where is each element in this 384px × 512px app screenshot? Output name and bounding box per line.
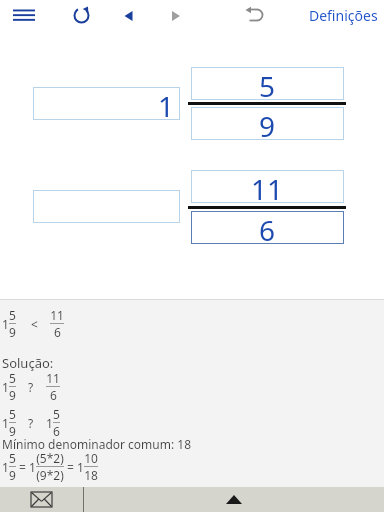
staticText: 5: [259, 67, 276, 100]
staticText: 1: [77, 459, 84, 475]
button[interactable]: [116, 2, 142, 30]
staticText: 10: [84, 450, 98, 466]
staticText: <: [31, 316, 38, 332]
button[interactable]: 9: [191, 107, 344, 140]
button[interactable]: [6, 2, 42, 30]
staticText: 5: [9, 406, 16, 422]
staticText: (5*2): [36, 450, 64, 466]
staticText: 6: [50, 387, 57, 403]
button[interactable]: Definições: [300, 2, 384, 28]
button[interactable]: 5: [191, 67, 344, 100]
staticText: 18: [84, 467, 98, 483]
staticText: =: [67, 459, 74, 475]
button[interactable]: 1: [33, 87, 180, 120]
staticText: 9: [9, 423, 16, 439]
staticText: 9: [9, 467, 16, 483]
staticText: ?: [28, 415, 34, 431]
staticText: 5: [9, 450, 16, 466]
button[interactable]: [84, 487, 384, 512]
staticText: 9: [9, 387, 16, 403]
staticText: 5: [9, 307, 16, 323]
staticText: 1: [2, 379, 9, 395]
staticText: 6: [53, 423, 60, 439]
button[interactable]: 11: [191, 170, 344, 203]
staticText: 1: [2, 459, 9, 475]
staticText: 9: [259, 107, 276, 140]
staticText: 5: [9, 370, 16, 386]
staticText: Mínimo denominador comum: 18: [2, 436, 192, 452]
button[interactable]: [164, 2, 190, 30]
button[interactable]: [240, 1, 268, 29]
staticText: 5: [53, 406, 60, 422]
staticText: 11: [50, 307, 64, 323]
staticText: 1: [2, 316, 9, 332]
staticText: Solução:: [2, 354, 54, 372]
staticText: 1: [158, 87, 175, 120]
staticText: 11: [46, 370, 60, 386]
button[interactable]: 6: [191, 211, 344, 244]
button[interactable]: [68, 2, 96, 30]
staticText: =: [19, 459, 26, 475]
staticText: ?: [28, 379, 34, 395]
staticText: 1: [2, 415, 9, 431]
staticText: 9: [9, 324, 16, 340]
button[interactable]: [0, 487, 83, 512]
staticText: (9*2): [36, 467, 64, 483]
staticText: 6: [259, 211, 276, 244]
staticText: Definições: [309, 6, 378, 25]
button[interactable]: [33, 190, 180, 223]
staticText: 6: [54, 324, 61, 340]
staticText: 1: [46, 415, 53, 431]
staticText: 11: [251, 170, 284, 203]
staticText: 1: [29, 459, 36, 475]
